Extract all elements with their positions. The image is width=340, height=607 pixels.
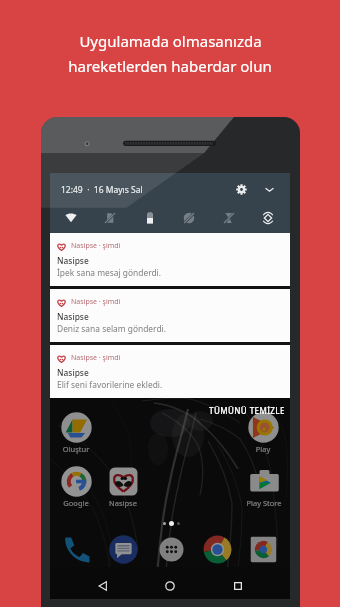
staticText: İpek sana mesaj gönderdi. [57,267,162,278]
button[interactable]: Google [53,466,99,508]
staticText: Elif seni favorilerine ekledi. [57,379,163,390]
button[interactable]: Do not disturb [179,208,199,228]
button[interactable]: Oluştur [53,412,99,454]
button[interactable]: Expand [259,179,279,199]
staticText: Google [53,498,99,508]
button[interactable]: Nasipse [100,466,146,508]
button[interactable]: Nasipse · şimdi [50,345,290,398]
button[interactable]: Photos [247,533,279,565]
button[interactable]: Mobile data off [100,208,120,228]
button[interactable]: Battery [140,208,160,228]
staticText: Nasipse · şimdi [71,241,121,251]
staticText: Nasipse [100,498,146,508]
button[interactable]: Settings [231,179,251,199]
button[interactable]: TÜMÜNÜ TEMİZLE [207,403,287,418]
staticText: Nasipse · şimdi [71,297,121,307]
staticText: Play Store [241,498,287,508]
staticText: TÜMÜNÜ TEMİZLE [209,405,285,416]
staticText: Oluştur [53,444,99,454]
button[interactable]: Phone [60,533,92,565]
button[interactable]: Flashlight [219,208,239,228]
button[interactable]: Home [163,579,177,593]
button[interactable]: Nasipse · şimdi [50,289,290,342]
button[interactable]: Recent apps [231,579,245,593]
button[interactable]: Auto-rotate [258,208,278,228]
button[interactable]: Wi-Fi [61,208,81,228]
staticText: Nasipse [57,367,89,378]
button[interactable]: Messages [107,533,139,565]
staticText: Nasipse · şimdi [71,353,121,363]
button[interactable]: Chrome [201,533,233,565]
button[interactable]: Play [240,412,286,454]
staticText: Deniz sana selam gönderdi. [57,323,166,334]
staticText: hareketlerden haberdar olun [68,56,272,76]
staticText: Nasipse [57,255,89,266]
staticText: Nasipse [57,311,89,322]
button[interactable]: Play Store [241,466,287,508]
staticText: Uygulamada olmasanızda [79,31,262,51]
button[interactable]: Back [96,579,110,593]
staticText: Play [240,444,286,454]
staticText: 12:49 · 16 Mayıs Sal [61,184,143,196]
button[interactable]: All apps [155,533,187,565]
button[interactable]: Nasipse · şimdi [50,233,290,286]
